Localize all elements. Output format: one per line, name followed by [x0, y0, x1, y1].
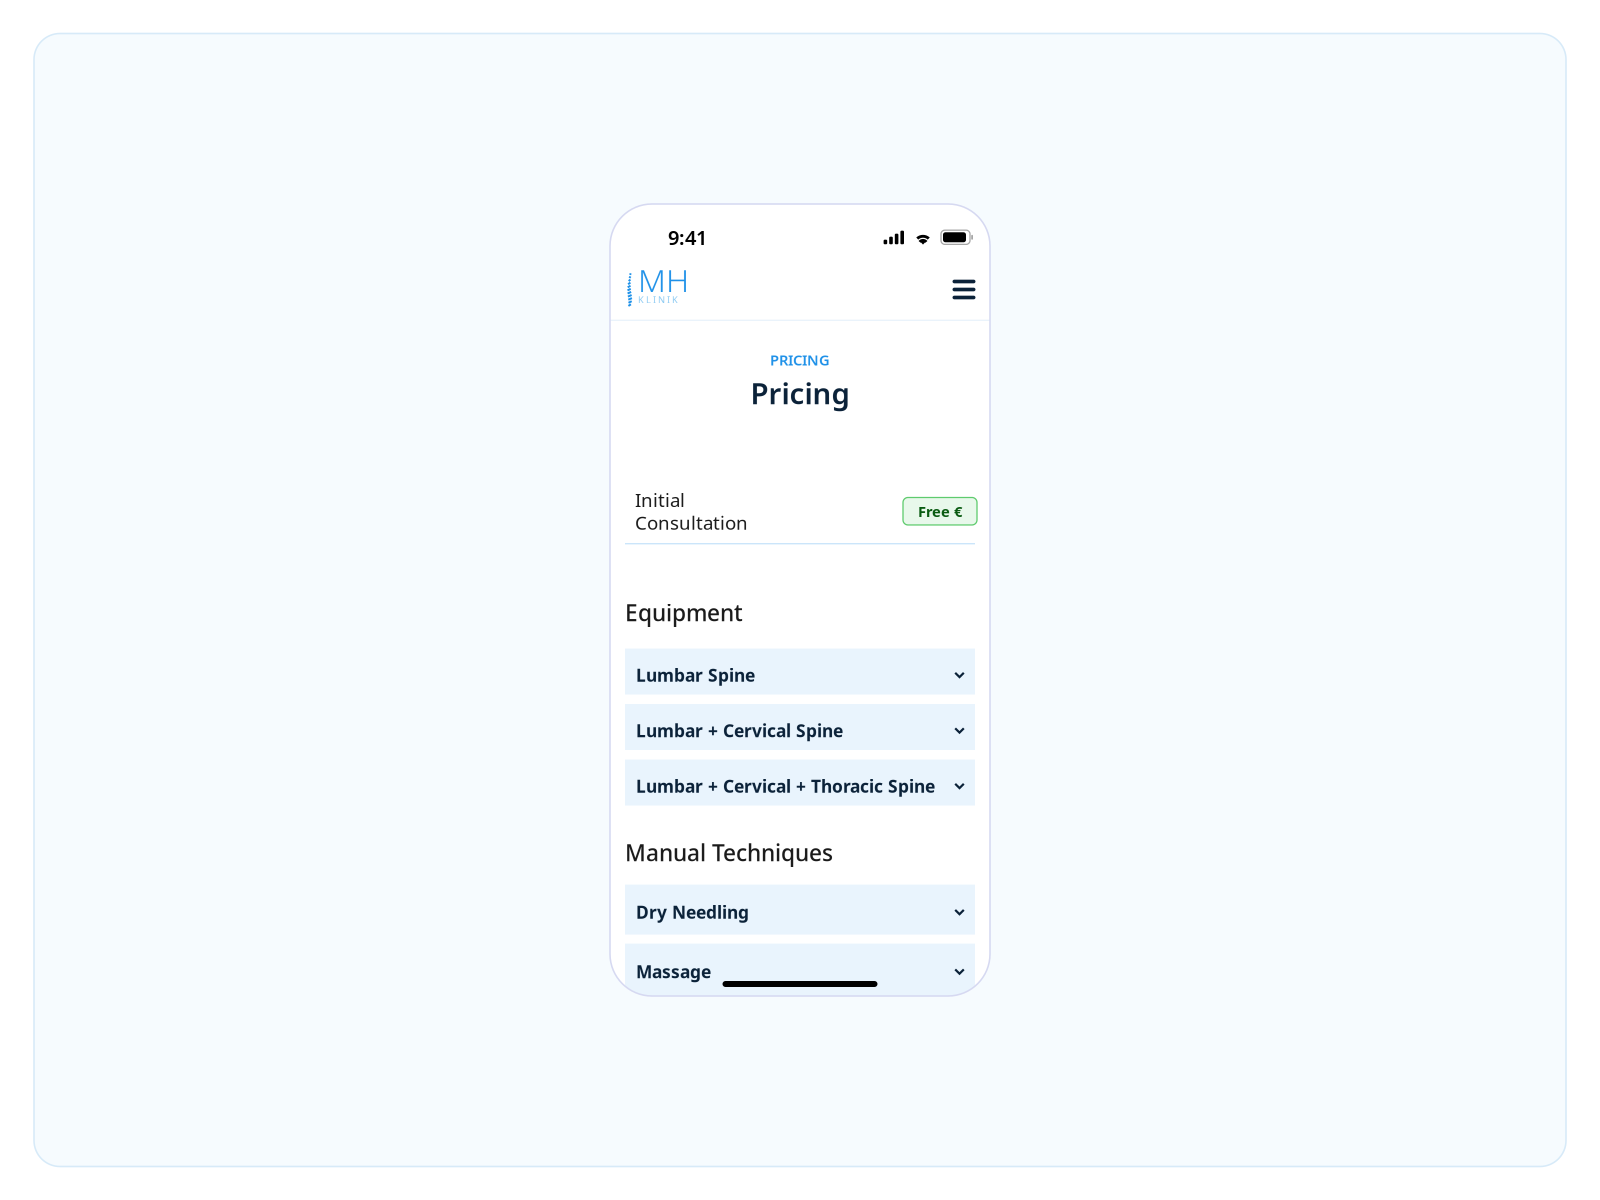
- staticText: Massage: [636, 960, 711, 983]
- button[interactable]: Lumbar + Cervical Spine: [625, 704, 975, 750]
- staticText: Lumbar Spine: [636, 663, 755, 686]
- staticText: K L I N I K: [638, 293, 678, 306]
- staticText: Initial: [635, 487, 685, 512]
- button[interactable]: Lumbar Spine: [625, 648, 975, 694]
- staticText: Lumbar + Cervical Spine: [636, 719, 843, 742]
- staticText: 9:41: [668, 224, 707, 251]
- staticText: MH: [638, 258, 689, 301]
- button[interactable]: Lumbar + Cervical + Thoracic Spine: [625, 759, 975, 805]
- staticText: Dry Needling: [636, 901, 749, 924]
- staticText: Free €: [918, 501, 962, 521]
- button[interactable]: Menu: [947, 272, 981, 306]
- button[interactable]: Dry Needling: [625, 885, 975, 935]
- staticText: Equipment: [625, 597, 743, 627]
- staticText: PRICING: [770, 350, 830, 369]
- button[interactable]: MH Klinik — home: [626, 271, 686, 307]
- staticText: Lumbar + Cervical + Thoracic Spine: [636, 774, 935, 797]
- staticText: Manual Techniques: [625, 837, 833, 868]
- button[interactable]: Massage: [625, 944, 975, 1004]
- staticText: Pricing: [750, 373, 849, 412]
- staticText: Consultation: [635, 510, 748, 535]
